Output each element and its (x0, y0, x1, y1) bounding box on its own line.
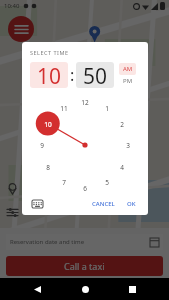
staticText: 7 (62, 178, 66, 187)
staticText: AM (123, 65, 133, 73)
button[interactable]: My location (4, 180, 20, 196)
staticText: 1 (105, 104, 109, 113)
staticText: : (70, 64, 75, 86)
staticText: 50 (83, 62, 108, 88)
button[interactable]: AM (119, 63, 136, 75)
staticText: 10 (44, 120, 52, 129)
button[interactable]: 10 (30, 62, 68, 88)
staticText: PM (123, 77, 133, 85)
button[interactable]: 50 (76, 62, 114, 88)
button[interactable]: Recents (122, 279, 142, 299)
button[interactable]: Filters (4, 204, 20, 220)
staticText: SELECT TIME (30, 49, 69, 56)
staticText: 3 (126, 141, 130, 150)
staticText: Call a taxi (64, 260, 105, 272)
staticText: 8 (46, 163, 50, 172)
staticText: CANCEL (92, 200, 115, 208)
button[interactable]: Switch to text input (30, 197, 44, 211)
button[interactable]: Menu (8, 16, 34, 42)
staticText: 6 (83, 184, 87, 193)
staticText: 10 (37, 62, 62, 88)
button[interactable]: PM (119, 75, 136, 87)
staticText: 11 (60, 104, 68, 113)
staticText: 10:40 (4, 2, 20, 10)
staticText: 4 (120, 163, 124, 172)
staticText: 5 (105, 178, 109, 187)
staticText: 9 (40, 141, 44, 150)
staticText: 12 (81, 98, 89, 107)
button[interactable]: Back (27, 279, 47, 299)
button[interactable]: Home (75, 279, 95, 299)
staticText: OK (127, 200, 136, 208)
button[interactable]: Call a taxi (6, 256, 163, 276)
staticText: Reservation date and time (10, 238, 85, 246)
button[interactable]: CANCEL (88, 197, 119, 211)
staticText: 2 (120, 120, 124, 129)
button[interactable]: OK (123, 197, 140, 211)
